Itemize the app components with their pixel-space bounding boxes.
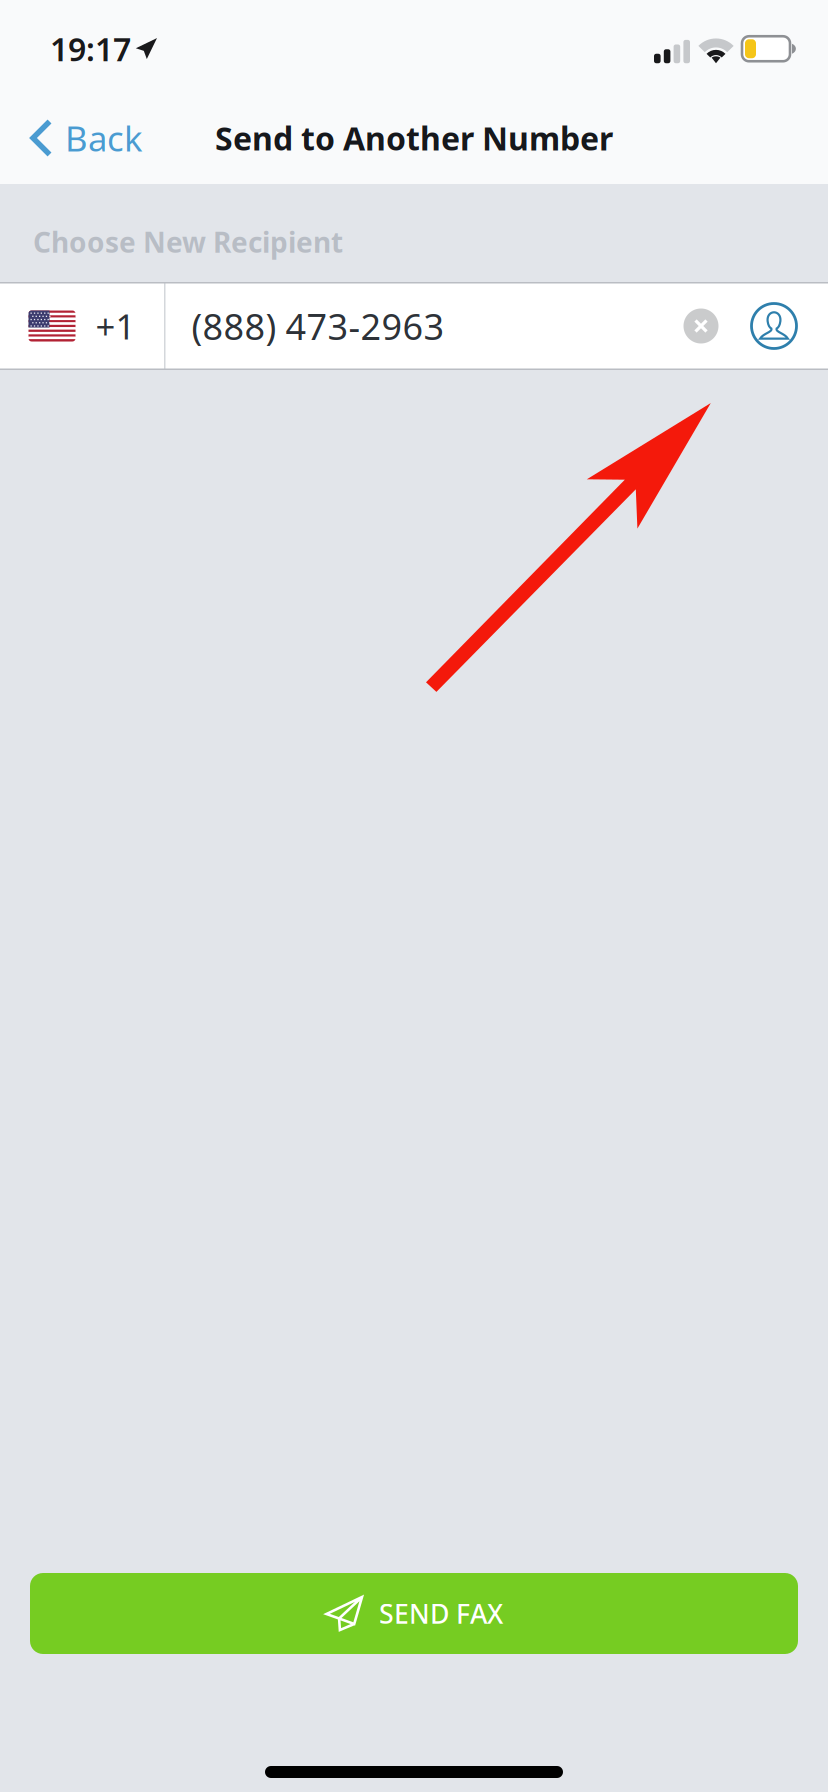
staticText: 19:17 — [50, 27, 131, 70]
button[interactable]: Country code, United States, plus 1 — [0, 282, 164, 370]
staticText: Send to Another Number — [215, 117, 613, 159]
button[interactable]: SEND FAX — [30, 1573, 798, 1654]
staticText: Choose New Recipient — [33, 223, 343, 261]
staticText: SEND FAX — [379, 1596, 503, 1631]
button[interactable]: Choose from contacts — [748, 300, 800, 352]
button[interactable]: Clear text — [678, 303, 724, 349]
button[interactable]: Back — [0, 103, 157, 173]
staticText: Back — [65, 115, 143, 161]
staticText: +1 — [95, 303, 135, 349]
button[interactable]: (888) 473-2963 — [165, 282, 444, 370]
staticText: (888) 473-2963 — [191, 302, 444, 350]
